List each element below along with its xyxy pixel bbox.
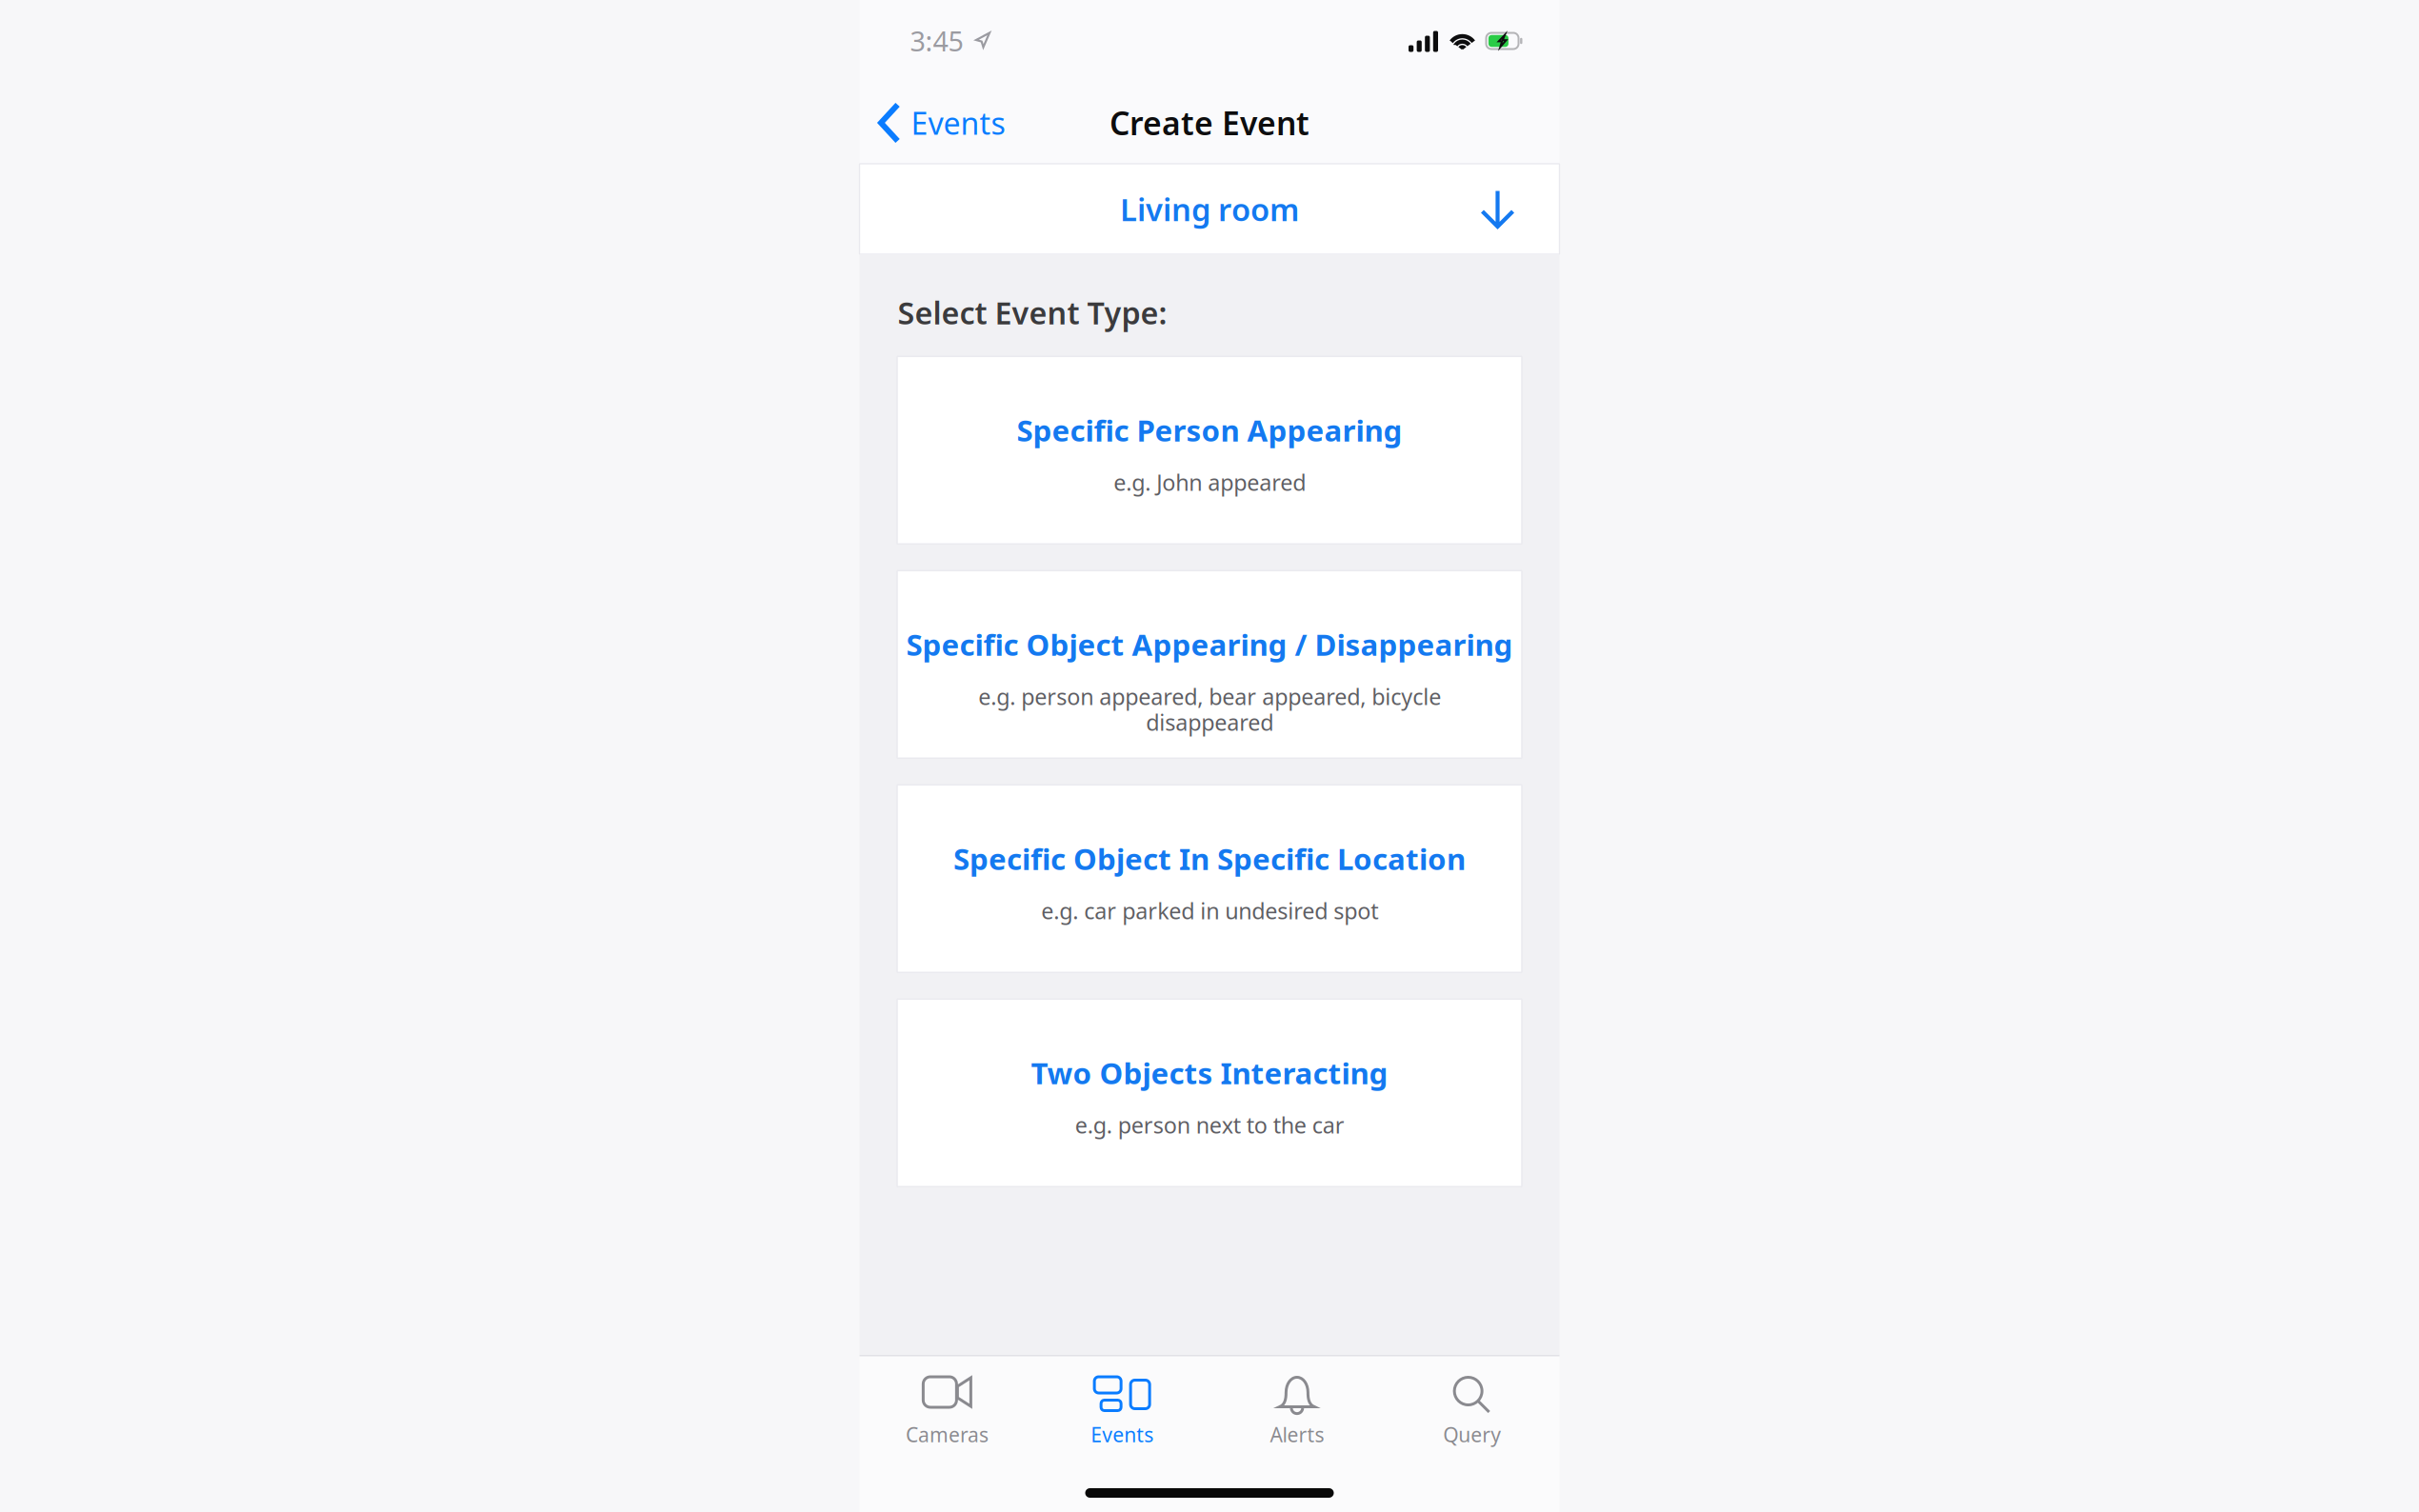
staticText: Living room (1120, 184, 1299, 234)
staticText: Cameras (906, 1418, 988, 1451)
staticText: e.g. person next to the car (1075, 1112, 1344, 1138)
staticText: e.g. John appeared (1113, 469, 1306, 495)
button[interactable]: Specific Person Appearing (897, 356, 1522, 544)
staticText: 3:45 (910, 19, 963, 63)
button[interactable]: Alerts (1209, 1356, 1385, 1470)
staticText: Specific Person Appearing (1017, 406, 1402, 454)
button[interactable]: Specific Object In Specific Location (897, 785, 1522, 972)
staticText: Events (911, 98, 1005, 148)
staticText: Create Event (1110, 97, 1309, 149)
button[interactable]: Events (1034, 1356, 1209, 1470)
button[interactable]: Specific Object Appearing / Disappearing (897, 571, 1522, 758)
staticText: Specific Object Appearing / Disappearing (906, 620, 1513, 668)
button[interactable]: Cameras (860, 1356, 1035, 1470)
staticText: Query (1443, 1418, 1501, 1451)
staticText: Select Event Type: (898, 288, 1167, 337)
button[interactable]: Events (878, 89, 1019, 157)
staticText: e.g. person appeared, bear appeared, bic… (978, 684, 1441, 735)
staticText: Two Objects Interacting (1031, 1049, 1388, 1097)
button[interactable]: Query (1385, 1356, 1560, 1470)
staticText: e.g. car parked in undesired spot (1041, 898, 1378, 923)
staticText: Events (1091, 1418, 1153, 1451)
staticText: Specific Object In Specific Location (953, 834, 1466, 883)
button[interactable]: Living room, choose camera (860, 164, 1559, 254)
staticText: Alerts (1270, 1418, 1324, 1451)
button[interactable]: Two Objects Interacting (897, 999, 1522, 1187)
